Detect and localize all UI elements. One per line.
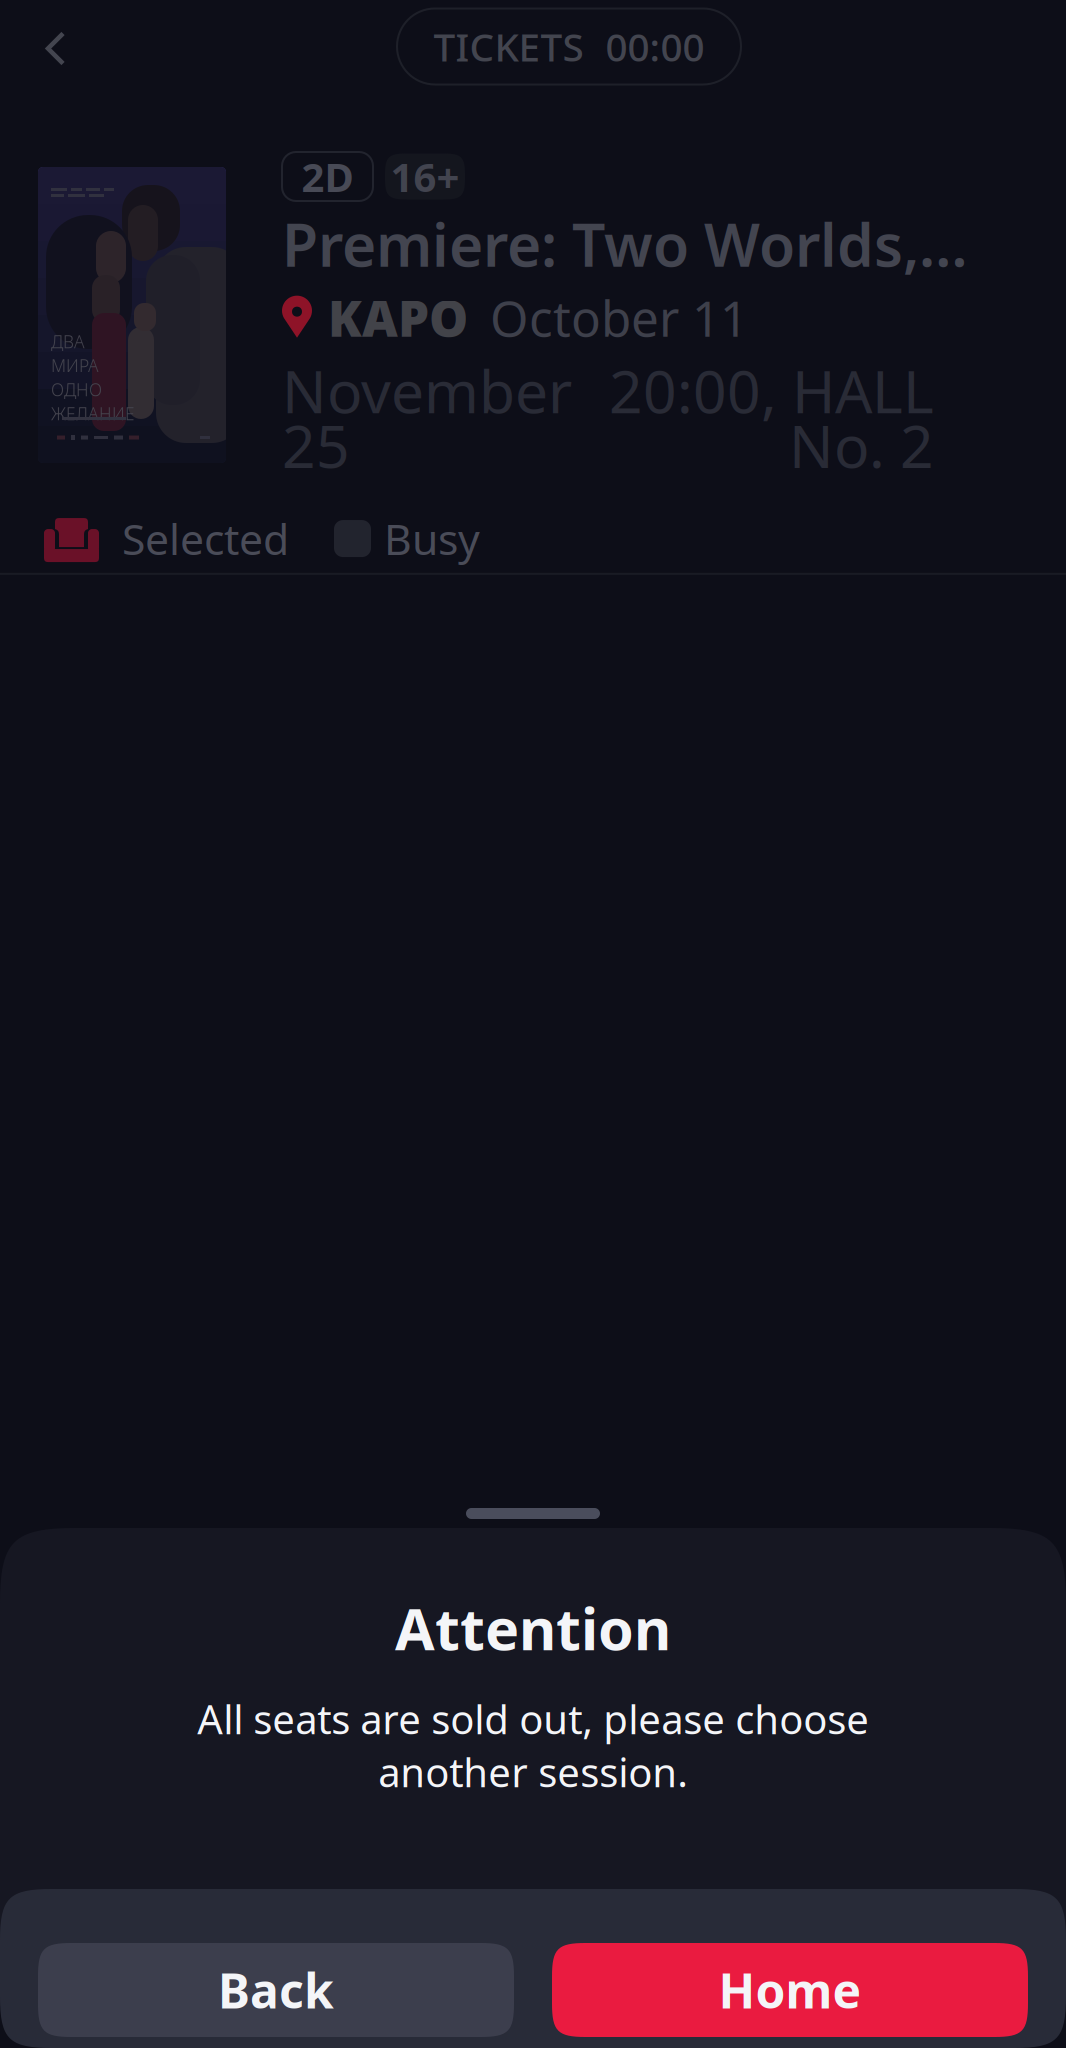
staticText: No. 2 — [789, 406, 934, 484]
staticText: 25 — [282, 406, 350, 484]
staticText: Back — [218, 1958, 334, 2022]
staticText: Selected — [122, 510, 289, 567]
staticText: ДВА — [51, 330, 85, 353]
staticText: 16+ — [390, 150, 459, 203]
button[interactable]: Back — [38, 1943, 514, 2037]
staticText: МИРА — [51, 354, 99, 377]
button[interactable]: Back — [0, 0, 91, 94]
staticText: Premiere: Two Worlds,… — [282, 205, 968, 283]
staticText: Home — [718, 1958, 861, 2022]
button[interactable]: Home — [552, 1943, 1028, 2037]
staticText: 20:00, HALL — [609, 351, 934, 429]
staticText: October 11 — [490, 285, 748, 350]
staticText: 00:00 — [605, 21, 704, 72]
staticText: All seats are sold out, please choose an… — [197, 1692, 869, 1798]
staticText: 2D — [301, 150, 353, 203]
staticText: ОДНО — [51, 378, 102, 401]
staticText: KAPO — [328, 285, 468, 350]
staticText: Busy — [384, 510, 480, 567]
staticText: November — [282, 351, 572, 429]
staticText: TICKETS — [433, 21, 583, 72]
staticText: ЖЕЛАНИЕ — [51, 402, 135, 425]
staticText: Attention — [395, 1590, 671, 1666]
